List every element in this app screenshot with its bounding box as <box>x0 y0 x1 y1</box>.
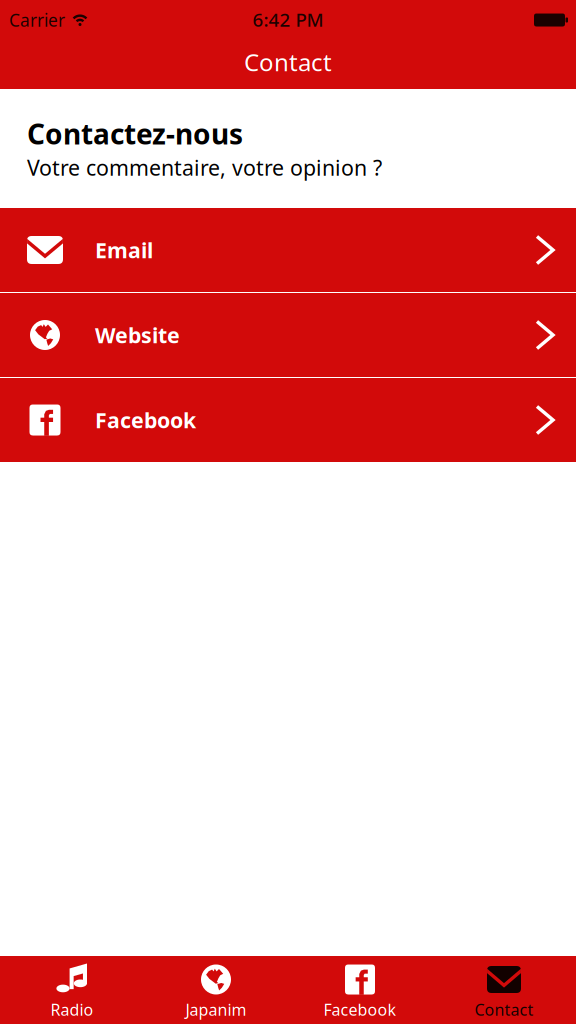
button[interactable]: Website <box>0 293 576 377</box>
staticText: Votre commentaire, votre opinion ? <box>27 153 382 181</box>
staticText: Facebook <box>323 999 396 1020</box>
staticText: Radio <box>50 999 93 1020</box>
staticText: 6:42 PM <box>252 7 323 32</box>
button[interactable]: Japanim <box>144 956 288 1024</box>
button[interactable]: Radio <box>0 956 144 1024</box>
staticText: Contact <box>474 999 533 1020</box>
button[interactable]: Contact <box>432 956 576 1024</box>
staticText: Website <box>95 321 180 349</box>
button[interactable]: Email <box>0 208 576 292</box>
button[interactable]: Facebook <box>288 956 432 1024</box>
button[interactable]: Facebook <box>0 378 576 462</box>
staticText: Contact <box>244 46 332 78</box>
staticText: Japanim <box>185 999 246 1020</box>
staticText: Facebook <box>95 406 196 434</box>
staticText: Carrier <box>9 8 65 31</box>
staticText: Contactez-nous <box>27 115 243 152</box>
staticText: Email <box>95 236 153 264</box>
